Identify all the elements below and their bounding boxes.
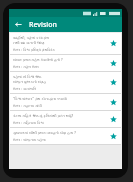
- staticText: નથી આ વાતની જાણ: [13, 40, 45, 45]
- button[interactable]: Favorite: [108, 114, 119, 125]
- button[interactable]: Favorite: [108, 58, 119, 69]
- staticText: ઉત્તર : સંસ્કૃતના પહેલા: [13, 137, 46, 142]
- staticText: "વિશ્વ સંસ્કાર" ગ્રંથ કોના દ્વારા રચાયો: [13, 96, 67, 101]
- button[interactable]: પહેલાં નો વિશ્વે શ્રેષ્ઠ: [10, 72, 121, 93]
- staticText: ગુજરાતમાં સૌથી પ્રથમ વસાહતો કોણ હતા ?: [13, 130, 76, 135]
- button[interactable]: Favorite: [108, 97, 119, 108]
- staticText: અહીંથી, પહેલાં કયા ગ્રંથ: [13, 35, 50, 40]
- button[interactable]: "વિશ્વ સંસ્કાર" ગ્રંથ કોના દ્વારા રચાયો: [10, 94, 121, 110]
- staticText: સંસ્કૃત પુસ્તકનો સંગ્રહ: [13, 79, 47, 84]
- button[interactable]: અહીંથી, પહેલાં કયા ગ્રંથ: [10, 33, 121, 54]
- staticText: ઉત્તર : મહિનાના વિશ્વ: [13, 120, 44, 125]
- button[interactable]: Favorite: [108, 131, 119, 142]
- staticText: સંસાર પ્રથમ મહેલ કેવાયેલો હતો ?: [13, 57, 63, 62]
- button[interactable]: Back: [12, 18, 25, 31]
- staticText: ઉત્તર : મહાત્મા ગાંધી: [13, 103, 42, 108]
- staticText: ઉત્તર : વિશ્વ પ્રસિદ્ધ ગ્રંથવિવેક: [13, 47, 56, 52]
- button[interactable]: કેટલા મહિને શ્રેષ્ઠ નું કૃતિમાંથી પ્રાપ્…: [10, 111, 121, 127]
- button[interactable]: Favorite: [108, 38, 119, 49]
- button[interactable]: ગુજરાતમાં સૌથી પ્રથમ વસાહતો કોણ હતા ?: [10, 128, 121, 144]
- staticText: ઉત્તર : મહેલ ઉત્તર: [13, 64, 40, 69]
- staticText: પહેલાં નો વિશ્વે શ્રેષ્ઠ: [13, 74, 42, 79]
- button[interactable]: સંસાર પ્રથમ મહેલ કેવાયેલો હતો ?: [10, 55, 121, 71]
- staticText: ઉત્તર : વાનસ્પતિ: [13, 86, 37, 91]
- staticText: કેટલા મહિને શ્રેષ્ઠ નું કૃતિમાંથી પ્રાપ્…: [13, 113, 74, 118]
- staticText: Revision: [29, 20, 57, 30]
- button[interactable]: Favorite: [108, 77, 119, 88]
